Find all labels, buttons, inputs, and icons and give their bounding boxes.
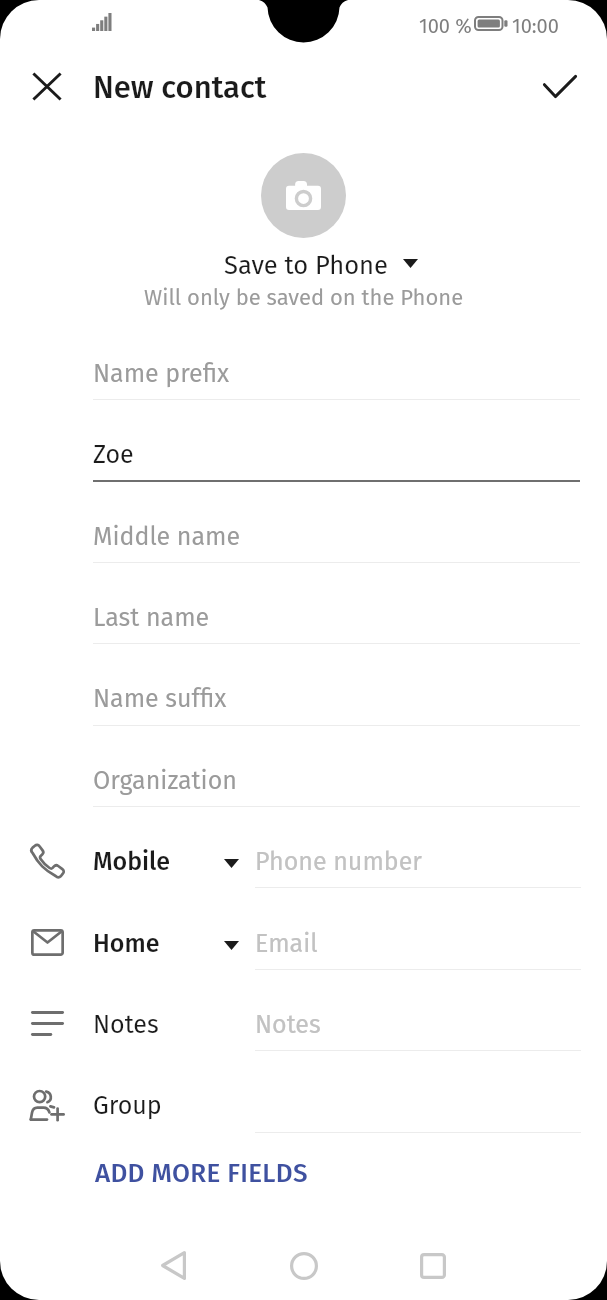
button[interactable]: Save xyxy=(535,61,585,111)
button[interactable]: Group xyxy=(0,1075,607,1137)
button[interactable]: Home xyxy=(0,913,607,975)
staticText: Last name xyxy=(93,603,210,633)
staticText: Middle name xyxy=(93,522,241,552)
staticText: Email xyxy=(255,929,318,959)
staticText: Name suffix xyxy=(93,684,227,714)
staticText: Save to Phone xyxy=(224,250,388,281)
staticText: Organization xyxy=(93,766,237,796)
button[interactable]: Notes xyxy=(0,994,607,1056)
button[interactable]: Save to Phone xyxy=(189,245,419,285)
staticText: Notes xyxy=(255,1010,321,1040)
staticText: Home xyxy=(93,929,160,959)
staticText: New contact xyxy=(93,69,267,106)
staticText: ADD MORE FIELDS xyxy=(95,1158,308,1189)
button[interactable]: Home xyxy=(269,1231,338,1300)
button[interactable]: Back xyxy=(139,1231,208,1300)
staticText: 100 % xyxy=(419,14,472,38)
staticText: Phone number xyxy=(255,847,422,877)
button[interactable]: Middle name xyxy=(0,506,607,568)
staticText: Name prefix xyxy=(93,359,230,389)
staticText: Mobile xyxy=(93,847,171,877)
staticText: Group xyxy=(93,1091,162,1121)
button[interactable]: Organization xyxy=(0,750,607,812)
button[interactable]: Close xyxy=(22,61,72,111)
button[interactable]: Last name xyxy=(0,587,607,649)
button[interactable]: ADD MORE FIELDS xyxy=(89,1153,314,1194)
button[interactable]: Mobile xyxy=(0,831,607,893)
button[interactable]: Recents xyxy=(398,1231,467,1300)
button[interactable]: Add photo xyxy=(261,153,346,238)
button[interactable]: Name prefix xyxy=(0,343,607,405)
staticText: 10:00 xyxy=(512,14,559,38)
staticText: Notes xyxy=(93,1010,159,1040)
button[interactable]: Name suffix xyxy=(0,668,607,730)
staticText: Zoe xyxy=(93,440,134,470)
staticText: Will only be saved on the Phone xyxy=(144,284,464,310)
button[interactable]: Zoe xyxy=(0,424,607,486)
